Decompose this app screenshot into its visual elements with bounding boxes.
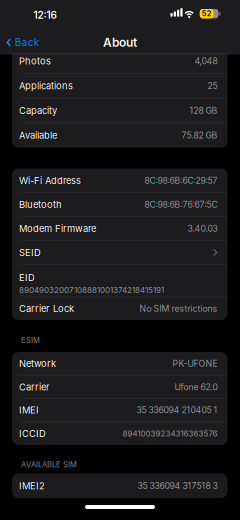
staticText: Available xyxy=(19,130,57,141)
staticText: Photos xyxy=(19,55,51,67)
staticText: Back xyxy=(15,36,39,48)
staticText: 89049032007108881001374218415191 xyxy=(19,285,164,295)
staticText: IMEI xyxy=(19,405,39,416)
staticText: Bluetooth xyxy=(19,199,62,210)
staticText: Carrier xyxy=(19,381,50,393)
staticText: ICCID xyxy=(19,428,46,439)
staticText: About xyxy=(103,35,137,50)
staticText: 89410039234316363576 xyxy=(122,429,217,438)
staticText: 8C:98:6B:6C:29:57 xyxy=(144,175,217,186)
staticText: Carrier Lock xyxy=(19,303,74,314)
staticText: Wi-Fi Address xyxy=(19,175,81,186)
staticText: Applications xyxy=(19,80,73,91)
staticText: ESIM xyxy=(21,336,40,345)
staticText: EID xyxy=(19,272,35,283)
staticText: 25 xyxy=(207,81,217,91)
staticText: 35 336094 210405 1 xyxy=(136,405,217,415)
staticText: SEID xyxy=(19,247,41,258)
staticText: 3.40.03 xyxy=(187,223,217,234)
staticText: 8C:98:6B:76:67:5C xyxy=(144,199,217,210)
button[interactable]: SEID xyxy=(19,241,217,264)
staticText: 75.82 GB xyxy=(181,130,217,141)
staticText: 52 xyxy=(202,9,212,18)
staticText: AVAILABLE SIM xyxy=(21,460,77,469)
staticText: PK-UFONE xyxy=(172,358,217,369)
staticText: 35 336094 317518 3 xyxy=(137,480,217,491)
staticText: 128 GB xyxy=(189,105,217,116)
staticText: 4,048 xyxy=(194,56,217,66)
staticText: Capacity xyxy=(19,105,57,116)
staticText: No SIM restrictions xyxy=(139,303,217,314)
staticText: Modem Firmware xyxy=(19,223,96,234)
staticText: IMEI2 xyxy=(19,480,45,491)
button[interactable]: Back xyxy=(0,32,39,52)
staticText: 12:16 xyxy=(33,9,56,21)
staticText: Network xyxy=(19,358,56,369)
staticText: Ufone 62.0 xyxy=(174,382,217,392)
